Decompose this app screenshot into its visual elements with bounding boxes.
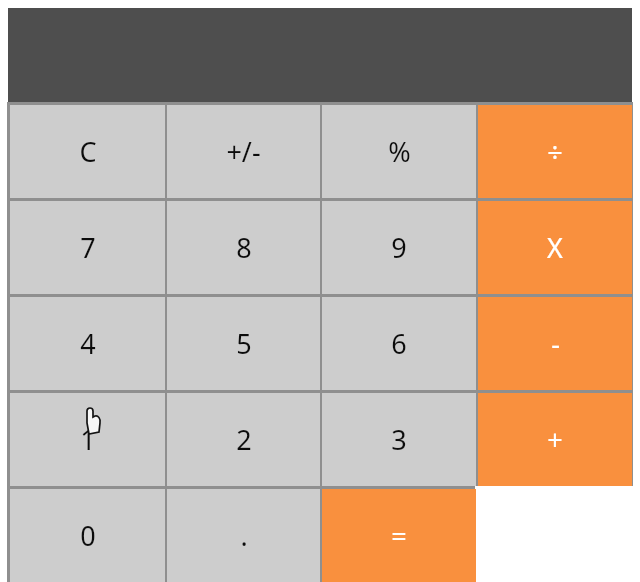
- staticText: =: [391, 517, 407, 554]
- staticText: 5: [236, 325, 252, 362]
- button[interactable]: 5: [167, 297, 320, 390]
- button[interactable]: .: [167, 489, 320, 582]
- button[interactable]: ÷: [478, 105, 632, 198]
- staticText: C: [79, 133, 97, 170]
- staticText: +: [547, 421, 563, 458]
- staticText: 4: [80, 325, 96, 362]
- staticText: 8: [236, 229, 252, 266]
- button[interactable]: 6: [322, 297, 476, 390]
- staticText: X: [547, 229, 563, 266]
- button[interactable]: =: [322, 489, 476, 582]
- button[interactable]: +: [478, 393, 632, 486]
- staticText: .: [240, 517, 248, 554]
- staticText: 9: [391, 229, 407, 266]
- staticText: 1: [80, 421, 96, 458]
- staticText: -: [551, 325, 560, 362]
- button[interactable]: 1: [10, 393, 165, 486]
- staticText: +/-: [226, 133, 261, 170]
- button[interactable]: +/-: [167, 105, 320, 198]
- button[interactable]: 0: [10, 489, 165, 582]
- staticText: 6: [391, 325, 407, 362]
- staticText: %: [388, 133, 411, 170]
- staticText: ÷: [547, 133, 563, 170]
- staticText: 2: [236, 421, 252, 458]
- button[interactable]: 4: [10, 297, 165, 390]
- button[interactable]: -: [478, 297, 632, 390]
- button[interactable]: C: [10, 105, 165, 198]
- button[interactable]: X: [478, 201, 632, 294]
- staticText: 7: [80, 229, 96, 266]
- staticText: 0: [80, 517, 96, 554]
- button[interactable]: 9: [322, 201, 476, 294]
- button[interactable]: 2: [167, 393, 320, 486]
- button[interactable]: 3: [322, 393, 476, 486]
- button[interactable]: %: [322, 105, 476, 198]
- button[interactable]: 7: [10, 201, 165, 294]
- button[interactable]: 8: [167, 201, 320, 294]
- staticText: 3: [391, 421, 407, 458]
